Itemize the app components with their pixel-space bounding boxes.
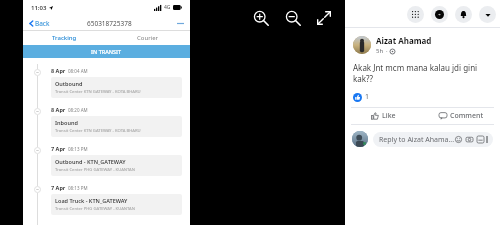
staticText: Outbound - KTN_GATEWAY [55,158,126,165]
button[interactable]: More options [176,19,184,27]
button[interactable]: IN TRANSIT [23,45,190,58]
staticText: 8 Apr [51,106,66,113]
button[interactable]: Tracking [23,31,106,45]
staticText: Courier [137,34,159,42]
staticText: 08:13 PM [68,146,88,152]
button[interactable]: 7 Apr [23,140,190,179]
staticText: Transit Center PHG GATEWAY - KUANTAN [55,206,135,212]
staticText: Transit Center KTN GATEWAY - KOTA BHARU [55,89,141,95]
button[interactable]: 1 [353,92,492,102]
staticText: Outbound [55,80,83,87]
button[interactable]: 7 Apr [23,179,190,218]
staticText: Aizat Ahamad [376,35,432,46]
staticText: Inbound [55,119,78,126]
button[interactable]: Courier [106,31,190,45]
button[interactable]: Back [29,19,50,28]
staticText: Load Truck - KTN_GATEWAY [55,197,128,204]
staticText: Like [382,111,396,121]
staticText: 4G [164,4,171,11]
button[interactable]: Fullscreen [317,11,331,25]
button[interactable]: Zoom in [253,10,269,26]
staticText: IN TRANSIT [91,48,122,55]
staticText: Back [35,19,50,28]
button[interactable]: Like [345,108,422,124]
staticText: 8 Apr [51,67,66,74]
button[interactable]: Notifications [455,6,472,23]
staticText: 11:03 [31,4,47,12]
staticText: Transit Center PHG GATEWAY - KUANTAN [55,167,135,173]
button[interactable]: 8 Apr [23,101,190,140]
staticText: 1 [365,92,370,102]
staticText: Akak Jnt mcm mana kalau jdi gini kak?? [353,62,492,84]
staticText: 08:04 AM [68,68,88,74]
staticText: Transit Center KTN GATEWAY - KOTA BHARU [55,128,141,134]
staticText: 5h [376,47,384,55]
staticText: Reply to Aizat Ahama... [379,135,455,145]
button[interactable]: Account [479,6,496,23]
staticText: Tracking [52,34,77,42]
staticText: 08:13 PM [68,185,88,191]
button[interactable]: Zoom out [285,10,301,26]
staticText: · [386,47,388,55]
button[interactable]: 8 Apr [23,62,190,101]
staticText: 650318725378 [87,19,132,28]
staticText: 7 Apr [51,145,66,152]
button[interactable]: Menu [407,6,424,23]
button[interactable]: Comment [422,108,500,124]
button[interactable]: Reply to Aizat Ahama... [373,132,493,147]
staticText: Comment [450,111,484,121]
staticText: 7 Apr [51,184,66,191]
button[interactable]: Messenger [431,6,448,23]
staticText: 08:20 AM [68,107,88,113]
